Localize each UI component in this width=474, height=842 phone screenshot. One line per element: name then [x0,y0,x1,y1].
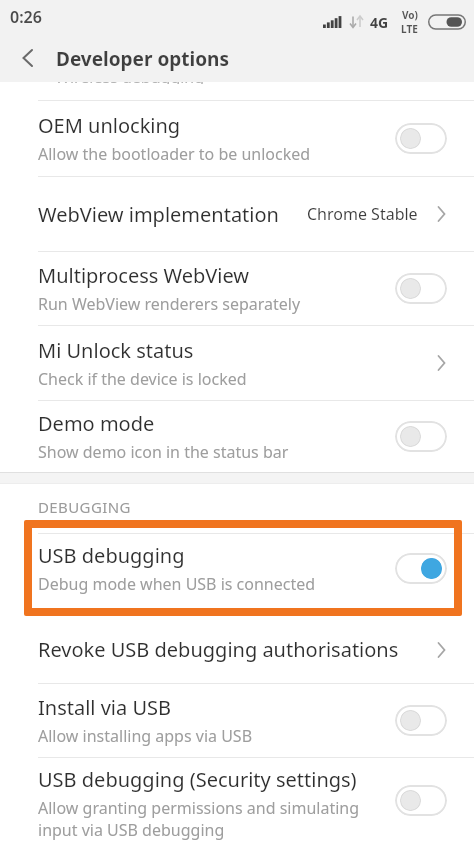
staticText: Chrome Stable [307,203,418,225]
staticText: Install via USB [38,694,172,721]
staticText: input via USB debugging [38,819,225,841]
staticText: LTE [401,22,418,36]
staticText: Run WebView renderers separately [38,293,301,315]
staticText: 4G [370,13,389,32]
staticText: Multiprocess WebView [38,262,250,289]
staticText: Show demo icon in the status bar [38,441,289,463]
staticText: Allow installing apps via USB [38,725,253,747]
button[interactable]: USB debugging [0,520,474,616]
staticText: Vo) [402,8,418,22]
staticText: Demo mode [38,410,155,437]
button[interactable]: Multiprocess WebView [0,252,474,325]
staticText: WebView implementation [38,201,279,228]
staticText: USB debugging [38,542,185,569]
button[interactable]: WebView implementation [0,177,474,251]
staticText: Debug mode when USB is connected [38,573,316,595]
button[interactable]: Install via USB [0,684,474,757]
staticText: 0:26 [10,6,42,28]
staticText: Allow the bootloader to be unlocked [38,143,311,165]
button[interactable]: Revoke USB debugging authorisations [0,616,474,683]
staticText: Check if the device is locked [38,368,247,390]
staticText: Revoke USB debugging authorisations [38,636,399,663]
staticText: Developer options [56,46,229,72]
button[interactable]: OEM unlocking [0,101,474,176]
staticText: DEBUGGING [38,497,131,517]
button[interactable]: USB debugging (Security settings) [0,758,474,842]
button[interactable]: Mi Unlock status [0,326,474,400]
staticText: USB debugging (Security settings) [38,766,357,793]
staticText: Allow granting permissions and simulatin… [38,797,360,819]
staticText: Wireless debugging [55,82,205,84]
staticText: Mi Unlock status [38,337,194,364]
button[interactable] [12,42,44,74]
button[interactable]: Demo mode [0,401,474,472]
staticText: OEM unlocking [38,112,181,139]
